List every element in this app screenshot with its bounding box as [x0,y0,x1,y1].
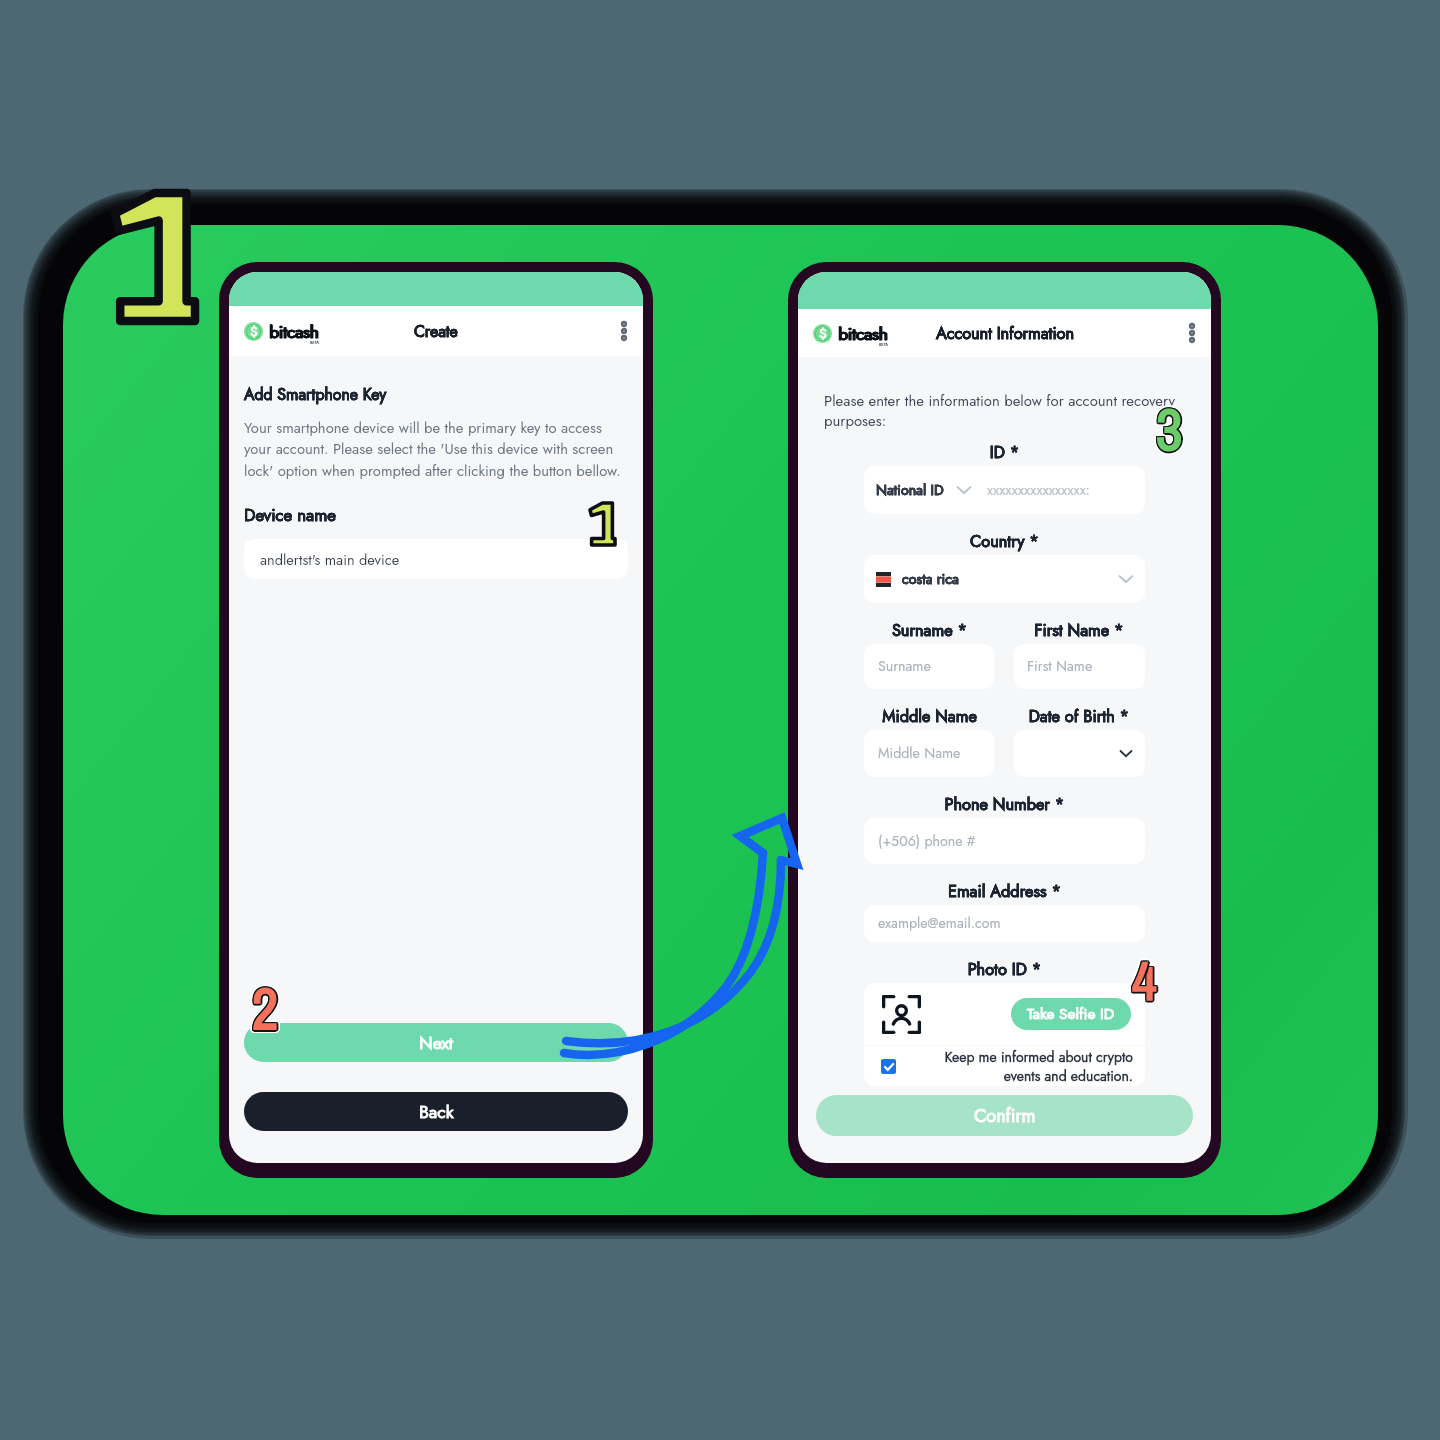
staticText: 3 [1156,393,1183,471]
staticText: 4 [1132,943,1157,1016]
staticText: 2 [252,972,279,1049]
staticText: 3 [1159,391,1186,469]
staticText: 3 [1158,392,1185,470]
button[interactable]: More options [613,313,635,349]
staticText: 4 [1131,944,1156,1017]
staticText: 3 [1155,390,1182,468]
staticText: 3 [1157,393,1184,471]
staticText: 3 [1158,390,1185,468]
staticText: Date of Birth * [1013,705,1145,727]
staticText: 3 [1157,389,1184,467]
staticText: 4 [1133,943,1158,1016]
staticText: 2 [252,966,279,1043]
button[interactable]: Next [244,1023,628,1062]
staticText: Next [419,1030,454,1055]
button[interactable]: Middle Name [864,730,995,777]
button[interactable] [1013,730,1145,777]
button[interactable]: (+506) phone # [864,818,1145,864]
staticText: 4 [1134,946,1159,1019]
staticText: 2 [252,971,279,1048]
button[interactable]: Back [244,1092,628,1131]
staticText: bitcash [269,319,319,344]
staticText: costa rica [902,569,959,590]
staticText: Create [414,320,458,343]
staticText: Create [414,320,458,343]
staticText: 4 [1130,942,1155,1015]
staticText: Country * [864,530,1145,552]
staticText: 3 [1156,390,1183,468]
staticText: 4 [1131,943,1156,1016]
staticText: 3 [1155,391,1182,469]
staticText: Surname * [864,619,995,641]
staticText: costa rica [902,569,959,590]
staticText: Account Information [936,321,1074,345]
staticText: Country * [864,530,1145,552]
staticText: 4 [1133,945,1158,1018]
staticText: bitcash [839,321,889,346]
staticText: 2 [249,970,276,1047]
staticText: bitcash [269,319,319,344]
staticText: 2 [254,969,281,1046]
button[interactable]: Take Selfie ID [1011,998,1131,1030]
staticText: 2 [254,967,281,1044]
staticText: 2 [253,968,280,1045]
staticText: 4 [1131,945,1156,1018]
staticText: 2 [253,968,280,1045]
staticText: 3 [1153,389,1180,467]
staticText: Date of Birth * [1013,705,1145,727]
staticText: 2 [251,970,278,1047]
staticText: 2 [251,969,278,1046]
staticText: Account Information [936,321,1074,345]
staticText: Phone Number * [864,793,1145,815]
staticText: example@email.com [878,913,1001,934]
staticText: 3 [1159,390,1186,468]
staticText: 4 [1134,942,1159,1015]
staticText: Middle Name [864,705,995,727]
button[interactable]: More options [1181,315,1203,351]
staticText: 3 [1157,389,1184,467]
staticText: Add Smartphone Key [244,383,387,406]
staticText: 2 [255,969,282,1046]
staticText: Surname * [864,619,995,641]
staticText: 3 [1153,391,1180,469]
button[interactable]: Surname [864,644,995,689]
staticText: costa rica [902,569,959,590]
button[interactable]: First Name [1013,644,1145,689]
staticText: Add Smartphone Key [244,383,387,406]
staticText: Device name [244,503,336,527]
staticText: 3 [1154,392,1181,470]
button[interactable]: Confirm [816,1095,1193,1136]
staticText: costa rica [902,569,959,590]
staticText: 3 [1156,387,1183,465]
staticText: Add Smartphone Key [244,383,387,406]
staticText: Phone Number * [864,793,1145,815]
staticText: Phone Number * [864,793,1145,815]
staticText: 3 [1157,391,1184,469]
staticText: Add Smartphone Key [244,383,387,406]
staticText: 3 [1155,389,1182,467]
staticText: Middle Name [864,705,995,727]
staticText: ID * [864,441,1145,463]
staticText: 4 [1135,944,1160,1017]
staticText: First Name * [1013,619,1145,641]
staticText: First Name * [1013,619,1145,641]
button[interactable]: andlertst's main device [244,539,628,579]
staticText: First Name [1027,656,1093,677]
staticText: 4 [1133,941,1158,1014]
button[interactable]: costa rica [864,555,1145,603]
staticText: Middle Name [864,705,995,727]
staticText: 3 [1156,389,1183,467]
button[interactable]: example@email.com [864,905,1145,942]
staticText: Date of Birth * [1013,705,1145,727]
staticText: National ID [876,480,944,501]
staticText: 3 [1157,391,1184,469]
staticText: National ID [876,480,944,501]
staticText: Date of Birth * [1013,705,1145,727]
staticText: 3 [1155,389,1182,467]
staticText: 3 [1159,389,1186,467]
staticText: 2 [254,971,281,1048]
staticText: 2 [250,971,277,1048]
button[interactable]: Keep me informed checkbox [881,1059,896,1074]
staticText: 3 [1157,389,1184,467]
button[interactable]: National ID [864,466,1145,514]
